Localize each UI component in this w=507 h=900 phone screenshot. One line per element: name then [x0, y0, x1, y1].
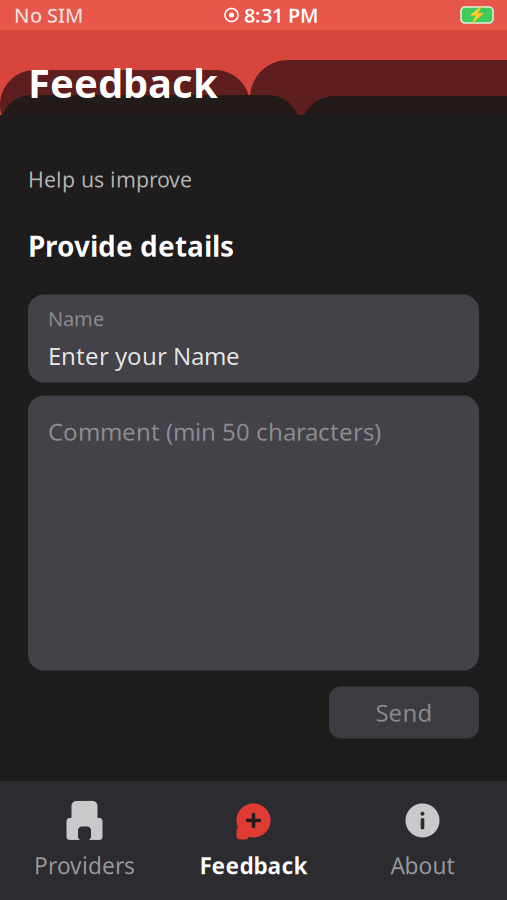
- staticText: Send: [375, 697, 432, 728]
- staticText: Comment (min 50 characters): [48, 415, 381, 447]
- staticText: Provide details: [28, 227, 234, 264]
- button[interactable]: Name: [28, 294, 479, 382]
- button[interactable]: About: [338, 790, 507, 890]
- staticText: ⚡: [467, 6, 487, 24]
- staticText: 8:31 PM: [244, 2, 319, 28]
- button[interactable]: Feedback: [169, 790, 338, 890]
- button[interactable]: Providers: [0, 790, 169, 890]
- staticText: No SIM: [14, 2, 83, 28]
- staticText: About: [390, 850, 454, 880]
- staticText: Providers: [34, 850, 135, 880]
- staticText: Feedback: [28, 56, 218, 109]
- staticText: Help us improve: [28, 165, 192, 193]
- button[interactable]: Comment (min 50 characters): [28, 395, 479, 670]
- staticText: Feedback: [199, 850, 307, 880]
- button[interactable]: Send: [329, 686, 479, 738]
- staticText: Name: [48, 305, 104, 332]
- staticText: Enter your Name: [48, 340, 240, 372]
